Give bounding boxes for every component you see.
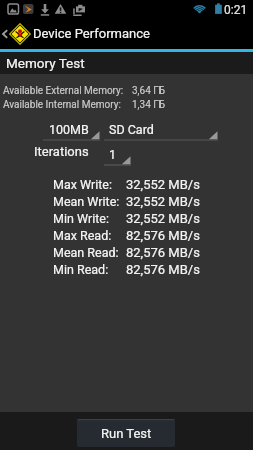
staticText: 32,552 MB/s	[126, 211, 200, 226]
staticText: Device Performance	[33, 26, 150, 41]
staticText: 3,64 ГБ	[132, 85, 166, 97]
staticText: 82,576 MB/s	[126, 262, 200, 277]
staticText: 100MB	[49, 122, 89, 137]
staticText: Max Write:	[53, 177, 112, 192]
button[interactable]: Run Test	[77, 419, 175, 447]
button[interactable]: Navigate up	[0, 19, 10, 49]
staticText: Run Test	[101, 426, 152, 441]
staticText: Min Write:	[53, 211, 109, 226]
staticText: 1	[109, 147, 117, 162]
staticText: Memory Test	[6, 55, 85, 71]
button[interactable]: 1	[104, 144, 131, 168]
button[interactable]: 100MB	[43, 119, 100, 143]
staticText: SD Card	[109, 122, 154, 137]
staticText: Max Read:	[53, 228, 112, 243]
staticText: 32,552 MB/s	[126, 177, 200, 192]
staticText: 1,34 ГБ	[132, 99, 166, 111]
button[interactable]: SD Card	[104, 119, 218, 143]
staticText: Available Internal Memory:	[3, 99, 121, 111]
staticText: 32,552 MB/s	[126, 194, 200, 209]
staticText: Mean Write:	[53, 194, 120, 209]
staticText: Mean Read:	[53, 245, 119, 260]
staticText: Min Read:	[53, 262, 109, 277]
staticText: 82,576 MB/s	[126, 245, 200, 260]
staticText: Iterations	[34, 144, 89, 159]
button[interactable]: Memory Test	[0, 52, 253, 74]
staticText: Available External Memory:	[3, 85, 124, 97]
staticText: 0:21	[224, 3, 248, 17]
staticText: 82,576 MB/s	[126, 228, 200, 243]
